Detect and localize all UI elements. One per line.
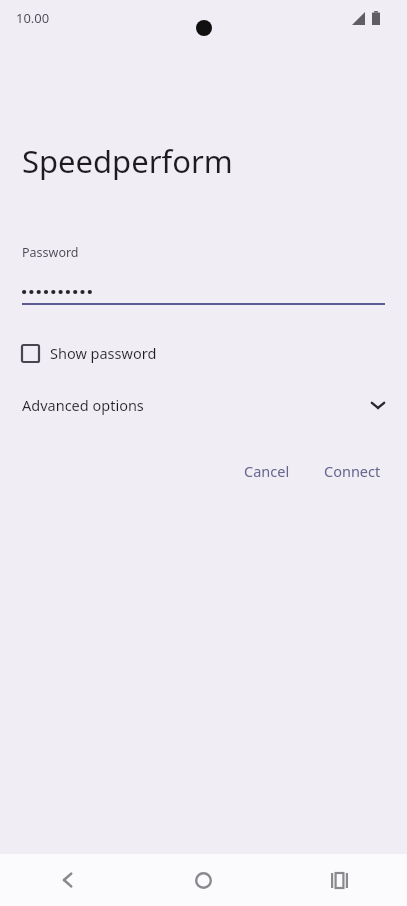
- button[interactable]: Cancel: [232, 453, 302, 489]
- button[interactable]: [22, 281, 385, 303]
- button[interactable]: Show password: [22, 343, 157, 363]
- staticText: Password: [22, 244, 79, 261]
- staticText: 10.00: [16, 9, 50, 27]
- button[interactable]: Connect: [312, 453, 393, 489]
- button[interactable]: Recent apps: [271, 854, 407, 906]
- staticText: Speedperform: [22, 140, 233, 182]
- staticText: Cancel: [244, 461, 290, 481]
- button[interactable]: Home: [135, 854, 271, 906]
- staticText: Connect: [324, 461, 381, 481]
- staticText: Show password: [50, 343, 157, 363]
- button[interactable]: Back: [0, 854, 135, 906]
- button[interactable]: Advanced options: [0, 389, 407, 421]
- staticText: Advanced options: [22, 395, 144, 415]
